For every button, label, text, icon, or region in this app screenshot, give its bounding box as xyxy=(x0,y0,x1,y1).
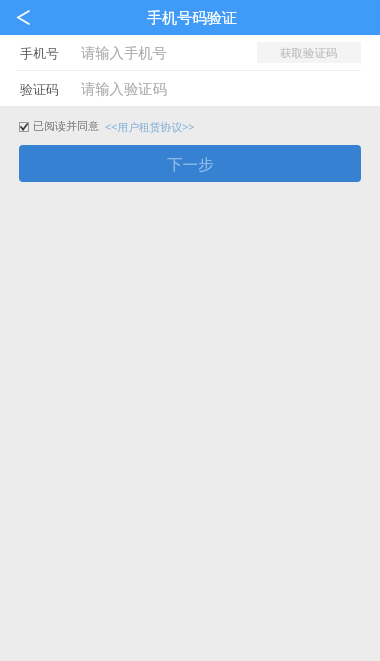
button[interactable]: <<用户租赁协议>> xyxy=(105,119,195,134)
staticText: 已阅读并同意 xyxy=(33,119,99,133)
staticText: 下一步 xyxy=(167,155,214,175)
button[interactable]: 下一步 xyxy=(19,145,361,182)
staticText: 请输入手机号 xyxy=(81,44,167,62)
staticText: 获取验证码 xyxy=(280,46,338,60)
staticText: 请输入验证码 xyxy=(81,80,167,98)
button[interactable]: 获取验证码 xyxy=(257,42,361,63)
staticText: 验证码 xyxy=(20,81,59,97)
staticText: 手机号 xyxy=(20,45,59,61)
staticText: 手机号码验证 xyxy=(147,9,237,28)
button[interactable]: Agree checkbox xyxy=(18,121,29,132)
button[interactable]: Back xyxy=(0,0,46,35)
